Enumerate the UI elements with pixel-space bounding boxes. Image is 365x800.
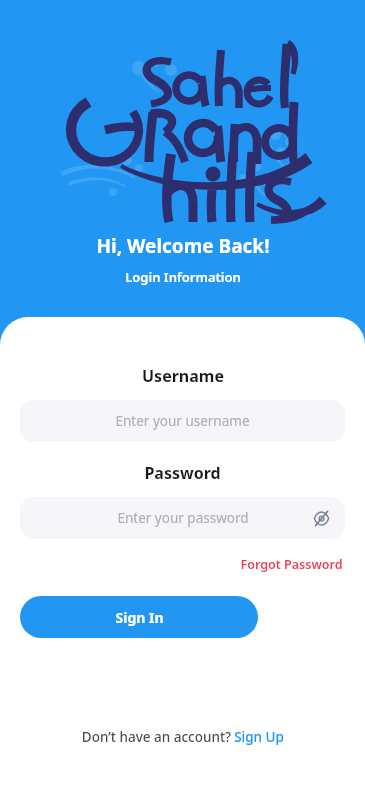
staticText: Password	[144, 462, 221, 484]
staticText: Enter your password	[117, 509, 249, 527]
button[interactable]: Enter your password	[20, 497, 345, 539]
staticText: Login Information	[125, 268, 241, 286]
staticText: Don’t have an account?	[80, 728, 233, 746]
staticText: Hi, Welcome Back!	[96, 233, 270, 259]
staticText: Username	[142, 365, 224, 387]
button[interactable]: Forgot Password	[238, 553, 345, 576]
staticText: Sign In	[115, 608, 164, 627]
button[interactable]: Sign Up	[233, 726, 285, 748]
button[interactable]: Sign In	[20, 596, 258, 638]
staticText: Forgot Password	[240, 556, 343, 573]
staticText: Enter your username	[115, 412, 250, 430]
button[interactable]: Enter your username	[20, 400, 345, 442]
staticText: Sign Up	[234, 728, 284, 746]
button[interactable]: Show password	[311, 508, 331, 528]
